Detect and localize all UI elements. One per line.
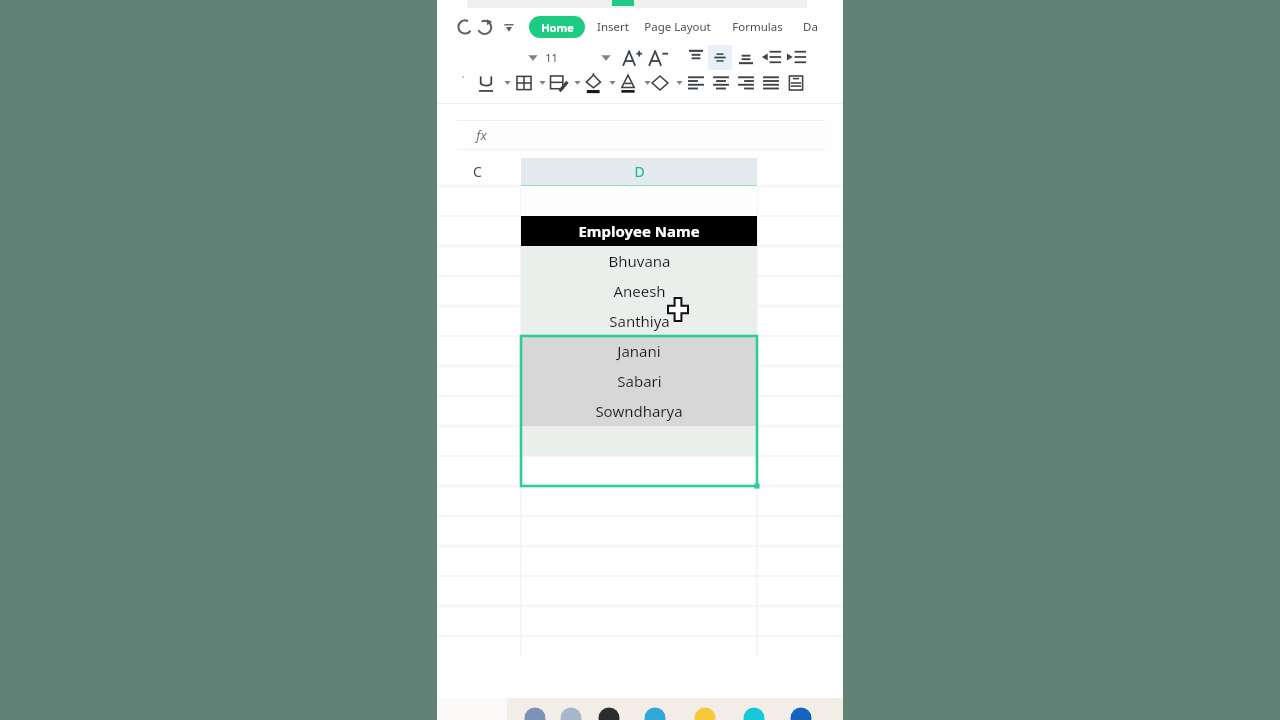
staticText: 11 [545,50,558,65]
staticText: Da [803,19,818,35]
button[interactable]: Align middle [708,45,732,70]
button[interactable]: Underline [475,72,497,94]
button[interactable]: Bhuvana [521,246,757,276]
button[interactable] [529,47,609,68]
staticText: Aneesh [613,281,666,301]
button[interactable]: Font color [617,72,639,94]
button[interactable]: App [789,706,813,720]
button[interactable]: Decrease font size [646,46,670,70]
button[interactable]: App [643,706,667,720]
staticText: Insert [597,19,629,35]
button[interactable]: Align bottom [735,46,757,68]
staticText: C [473,162,482,181]
staticText: fx [476,126,487,144]
staticText: Home [541,20,574,35]
button[interactable]: Fill color [582,72,604,94]
button[interactable]: Wrap text [785,72,807,94]
button[interactable]: Home [529,16,585,38]
button[interactable]: App [523,706,547,720]
button[interactable]: Page Layout [641,16,713,38]
button[interactable]: Decrease indent [760,46,784,68]
button[interactable]: Align left [685,72,707,94]
button[interactable]: Align right [735,72,757,94]
button[interactable]: Employee Name [521,216,757,246]
button[interactable]: Justify [760,72,782,94]
button[interactable]: Insert function [467,122,495,148]
button[interactable]: Cell style [547,72,569,94]
button[interactable]: Sabari [521,366,757,396]
button[interactable]: Santhiya [521,306,757,336]
button[interactable]: C [457,158,497,185]
button[interactable]: Clear format [649,72,671,94]
button[interactable]: Redo [475,16,495,38]
button[interactable]: Increase indent [785,46,809,68]
button[interactable]: Aneesh [521,276,757,306]
staticText: Santhiya [609,311,670,331]
button[interactable]: Janani [521,336,757,366]
button[interactable]: Sowndharya [521,396,757,426]
staticText: Formulas [732,19,783,35]
button[interactable]: D [521,158,757,185]
button[interactable]: Align center [710,72,732,94]
button[interactable]: App [559,706,583,720]
staticText: Sowndharya [595,401,683,421]
staticText: Janani [617,341,661,361]
button[interactable]: App [742,706,766,720]
button[interactable]: Undo [454,16,474,38]
staticText: D [634,162,645,181]
button[interactable]: Align top [685,46,707,68]
staticText: Sabari [617,371,662,391]
button[interactable]: Formulas [729,16,785,38]
button[interactable]: Insert [593,16,633,38]
staticText: Page Layout [644,19,711,35]
button[interactable]: App [693,706,717,720]
staticText: Bhuvana [608,251,671,271]
button[interactable]: App [597,706,621,720]
button[interactable]: Da [799,16,821,38]
button[interactable]: Increase font size [620,46,644,70]
button[interactable]: Borders [513,72,535,94]
button[interactable]: More [499,16,519,38]
staticText: Employee Name [578,221,700,241]
